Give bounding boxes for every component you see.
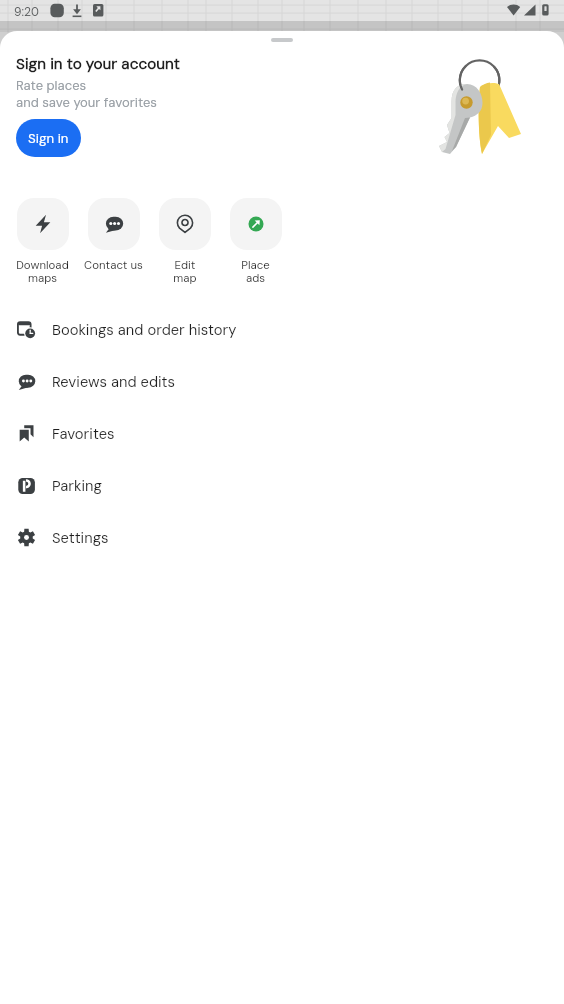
- staticText: Sign in to your account: [16, 54, 181, 74]
- button[interactable]: Download maps: [7, 198, 78, 286]
- button[interactable]: Sign in: [16, 119, 81, 157]
- staticText: Edit map: [173, 258, 197, 286]
- staticText: Bookings and order history: [52, 320, 237, 339]
- staticText: Download maps: [16, 258, 69, 286]
- button[interactable]: Drag handle: [0, 31, 564, 42]
- button[interactable]: Parking: [0, 459, 564, 511]
- staticText: Settings: [52, 528, 109, 547]
- button[interactable]: Edit map: [149, 198, 220, 286]
- button[interactable]: Reviews and edits: [0, 355, 564, 407]
- button[interactable]: Favorites: [0, 407, 564, 459]
- staticText: Sign in: [28, 130, 69, 147]
- staticText: Place ads: [241, 258, 270, 286]
- button[interactable]: Settings: [0, 511, 564, 563]
- staticText: Favorites: [52, 424, 115, 443]
- staticText: Contact us: [84, 258, 143, 273]
- button[interactable]: Contact us: [78, 198, 149, 273]
- staticText: 9:20: [14, 4, 39, 20]
- staticText: Reviews and edits: [52, 372, 175, 391]
- button[interactable]: Bookings and order history: [0, 303, 564, 355]
- staticText: Parking: [52, 476, 102, 495]
- button[interactable]: Place ads: [220, 198, 291, 286]
- staticText: Rate places and save your favorites: [16, 77, 157, 111]
